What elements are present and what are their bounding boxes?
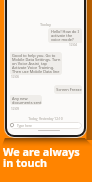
staticText: Good to help you. Go to Mobile Data Sett… — [12, 53, 61, 74]
staticText: Hello! How do I activate the voice mode? — [51, 29, 81, 42]
staticText: Type here — [17, 124, 32, 128]
button[interactable]: Type here — [10, 122, 82, 129]
staticText: 12:09 — [11, 107, 20, 111]
staticText: Today — [7, 22, 84, 27]
staticText: Screen Freeze — [56, 87, 82, 92]
staticText: Any new documents sent — [12, 96, 42, 105]
staticText: Today, Yesterday 12:10 — [7, 117, 84, 121]
button[interactable] — [10, 95, 42, 105]
staticText: 12:06 — [11, 75, 20, 79]
button[interactable] — [54, 85, 82, 94]
button[interactable] — [48, 28, 82, 43]
staticText: We are always in touch — [3, 144, 80, 170]
button[interactable] — [10, 52, 62, 75]
button[interactable]: Attach — [10, 123, 14, 127]
staticText: 12:04 — [69, 43, 78, 47]
